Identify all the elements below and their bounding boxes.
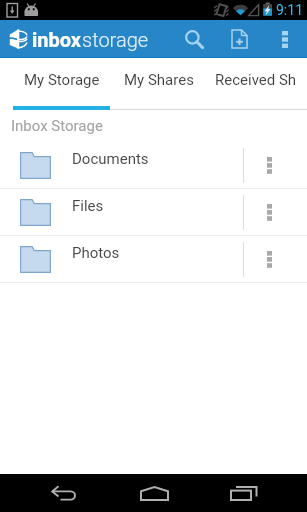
staticText: Files [72,197,104,215]
button[interactable]: Received Sh [207,58,304,110]
button[interactable]: Documents [0,142,307,188]
button[interactable]: My Shares [110,58,207,110]
button[interactable]: More options for Photos [244,236,307,282]
button[interactable]: Files [0,189,307,235]
button[interactable]: Photos [0,236,307,282]
button[interactable]: Search [172,20,217,58]
button[interactable]: Home [109,474,199,512]
staticText: storage [82,28,149,51]
staticText: inbox [32,28,82,51]
staticText: My Storage [24,71,100,89]
button[interactable]: More options for Documents [244,142,307,188]
button[interactable]: Back [19,474,109,512]
staticText: My Shares [124,71,194,89]
staticText: 9:11 [276,2,303,18]
staticText: Documents [72,150,149,168]
staticText: Photos [72,244,120,262]
button[interactable]: More options for Files [244,189,307,235]
button[interactable]: My Storage [13,58,110,110]
button[interactable]: Recents [199,474,289,512]
button[interactable]: New file [217,20,262,58]
staticText: Received Sh [215,71,297,89]
button[interactable]: More options [262,20,307,58]
staticText: Inbox Storage [11,117,103,135]
